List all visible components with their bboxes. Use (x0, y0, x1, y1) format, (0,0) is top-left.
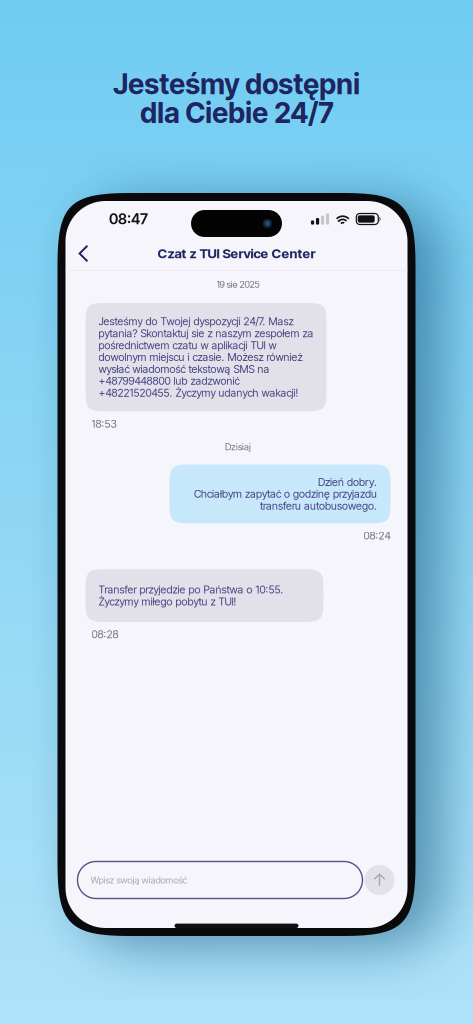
staticText: 08:24 (363, 529, 390, 542)
staticText: Jesteśmy dostępni dla Ciebie 24/7 (113, 67, 360, 130)
staticText: 18:53 (91, 417, 116, 430)
button[interactable]: Back (65, 238, 101, 268)
button[interactable]: Send (364, 865, 394, 895)
staticText: Dzień dobry. Chciałbym zapytać o godzinę… (193, 475, 376, 512)
staticText: 08:28 (91, 628, 118, 641)
staticText: Dzisiaj (225, 441, 251, 452)
staticText: Czat z TUI Service Center (157, 245, 315, 261)
staticText: Transfer przyjedzie po Państwa o 10:55. … (98, 583, 283, 608)
button[interactable]: Wpisz swoją wiadomość (77, 861, 362, 898)
staticText: Jesteśmy do Twojej dyspozycji 24/7. Masz… (98, 315, 313, 399)
staticText: 19 sie 2025 (216, 279, 259, 290)
staticText: 08:47 (109, 210, 148, 228)
staticText: Wpisz swoją wiadomość (90, 874, 187, 886)
